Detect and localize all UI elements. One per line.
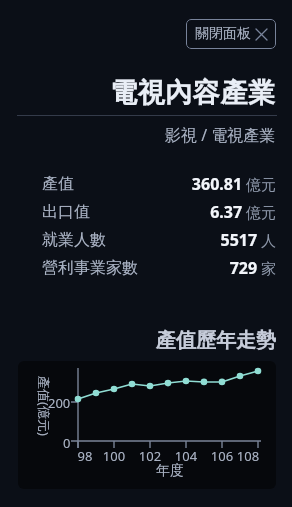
staticText: 360.81 億元 [191,173,276,195]
staticText: 98 [69,447,101,465]
staticText: 影視 / 電視產業 [165,124,276,146]
staticText: 產值 [42,174,74,194]
button[interactable]: 營利事業家數 [0,254,292,282]
staticText: 104 [170,447,202,465]
button[interactable]: 產值 [0,170,292,198]
button[interactable]: 關閉面板 [186,19,276,49]
staticText: 年度 [156,462,184,478]
staticText: 729 家 [229,257,276,279]
staticText: 就業人數 [42,230,106,250]
staticText: 關閉面板 [195,25,251,43]
staticText: 0 [63,434,71,450]
staticText: 營利事業家數 [42,258,138,278]
staticText: 106 [206,447,238,465]
staticText: 產值歷年走勢 [156,328,276,353]
staticText: 102 [134,447,166,465]
button[interactable]: 出口值 [0,198,292,226]
staticText: 200 [48,394,71,410]
staticText: 100 [98,447,130,465]
staticText: 5517 人 [220,229,276,251]
staticText: 6.37 億元 [210,201,276,223]
button[interactable]: 就業人數 [0,226,292,254]
staticText: 電視內容產業 [110,76,276,110]
staticText: 108 [232,447,264,465]
other: Close panel [255,28,268,41]
staticText: 出口值 [42,202,90,222]
staticText: 產值(億元) [37,376,53,436]
